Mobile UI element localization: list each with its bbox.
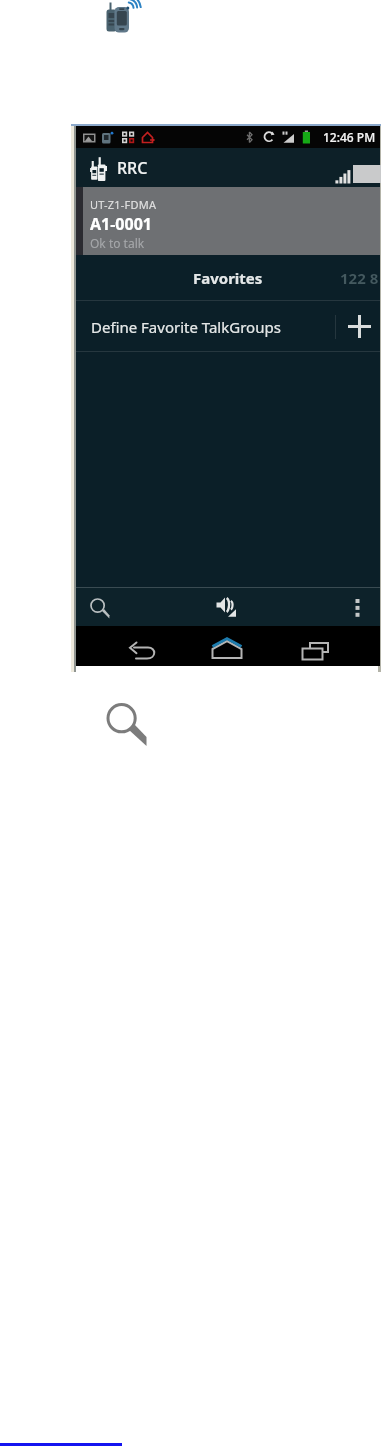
button[interactable]: Favorites	[154, 255, 302, 301]
button[interactable]: More options	[334, 587, 380, 626]
button[interactable]: RRC	[90, 157, 148, 181]
button[interactable]: Define Favorite TalkGroups	[76, 301, 380, 352]
button[interactable]: UT-Z1-FDMA	[76, 187, 380, 255]
staticText: RRC	[117, 157, 148, 179]
button[interactable]: Recent apps	[288, 626, 346, 666]
staticText: Favorites	[193, 268, 263, 288]
button[interactable]: Home	[199, 626, 257, 666]
button[interactable]: Back	[116, 626, 170, 666]
staticText: Define Favorite TalkGroups	[91, 317, 281, 337]
button[interactable]: Audio output	[203, 587, 251, 626]
staticText: 12:46 PM	[323, 129, 376, 145]
button[interactable]: Add favorite talkgroup	[338, 301, 380, 352]
staticText: A1-0001	[90, 213, 152, 235]
button[interactable]: 122 8	[316, 255, 381, 301]
button[interactable]: Search	[78, 587, 124, 626]
staticText: UT-Z1-FDMA	[90, 197, 157, 212]
staticText: 122 8	[340, 268, 379, 288]
staticText: Ok to talk	[90, 235, 145, 251]
